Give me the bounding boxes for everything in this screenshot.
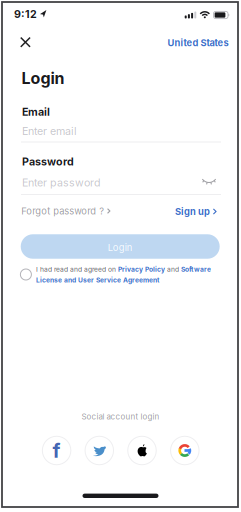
staticText: f <box>53 439 61 462</box>
button[interactable]: Login with Twitter <box>85 436 113 465</box>
staticText: Enter email <box>22 125 77 137</box>
staticText: I had read and agreed on <box>36 265 118 273</box>
staticText: Enter password <box>22 176 101 189</box>
button[interactable]: Show password <box>197 172 220 190</box>
staticText: Software <box>181 265 211 273</box>
button[interactable]: Login with Apple <box>128 436 156 465</box>
staticText: Login <box>108 242 133 253</box>
staticText: Sign up <box>175 206 210 217</box>
button[interactable]: Agree to terms <box>20 269 31 280</box>
button[interactable]: Forgot password ? <box>21 205 111 216</box>
staticText: United States <box>167 37 228 48</box>
button[interactable]: Login with Google <box>171 436 199 465</box>
button[interactable]: Close <box>12 29 39 55</box>
button[interactable]: Sign up <box>175 206 217 217</box>
staticText: 9:12 <box>14 8 37 20</box>
staticText: License and User Service Agreement <box>36 276 159 284</box>
staticText: and <box>165 265 181 273</box>
staticText: Email <box>22 105 50 118</box>
button[interactable]: Software <box>181 265 211 273</box>
button[interactable]: License and User Service Agreement <box>36 276 159 284</box>
button[interactable]: Privacy Policy <box>118 265 165 273</box>
staticText: Privacy Policy <box>118 265 165 273</box>
staticText: Password <box>22 155 74 168</box>
staticText: Forgot password ? <box>21 205 104 216</box>
button[interactable]: Login with Facebook <box>42 436 71 465</box>
button[interactable]: United States <box>167 37 228 48</box>
button[interactable]: Login <box>21 234 220 259</box>
staticText: Login <box>21 69 64 88</box>
staticText: Social account login <box>81 412 159 421</box>
